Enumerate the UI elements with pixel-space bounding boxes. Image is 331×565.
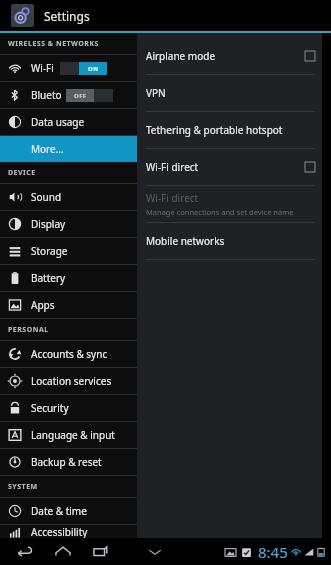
button[interactable]: Storage: [0, 238, 137, 264]
button[interactable]: Recent apps: [86, 540, 116, 564]
button[interactable]: Checkbox: [305, 51, 315, 61]
staticText: Bluetooth: [31, 88, 65, 102]
button[interactable]: Wi-Fi: [0, 55, 137, 81]
staticText: 8:45: [258, 542, 288, 562]
staticText: DEVICE: [8, 168, 36, 178]
button[interactable]: Battery: [0, 265, 137, 291]
staticText: PERSONAL: [8, 325, 49, 335]
button[interactable]: Sound: [0, 184, 137, 210]
button[interactable]: Tethering & portable hotspot: [146, 112, 322, 148]
button[interactable]: Checkbox: [305, 162, 315, 172]
button[interactable]: Toggle off: [66, 89, 113, 102]
staticText: Storage: [31, 244, 68, 258]
button[interactable]: Home: [48, 540, 78, 564]
button[interactable]: Accessibility: [0, 525, 137, 538]
button[interactable]: Airplane mode: [146, 38, 322, 74]
button[interactable]: Bluetooth: [0, 82, 137, 108]
button[interactable]: Language & input: [0, 422, 137, 448]
staticText: Accessibility: [31, 525, 88, 538]
button[interactable]: Wi-Fi direct: [146, 149, 322, 185]
staticText: Wi-Fi direct: [146, 191, 199, 205]
button[interactable]: VPN: [146, 75, 322, 111]
staticText: Apps: [31, 298, 55, 312]
staticText: Battery: [31, 271, 66, 285]
button[interactable]: Data usage: [0, 109, 137, 135]
staticText: Location services: [31, 374, 112, 388]
button[interactable]: Back: [10, 540, 40, 564]
staticText: Mobile networks: [146, 234, 225, 248]
staticText: WIRELESS & NETWORKS: [8, 39, 99, 49]
staticText: Accounts & sync: [31, 347, 108, 361]
staticText: VPN: [146, 86, 166, 100]
staticText: Wi-Fi: [31, 61, 54, 75]
button[interactable]: Backup & reset: [0, 449, 137, 475]
staticText: Backup & reset: [31, 455, 102, 469]
button[interactable]: Display: [0, 211, 137, 237]
staticText: Airplane mode: [146, 49, 216, 63]
staticText: SYSTEM: [8, 482, 38, 492]
other: Settings app icon: [11, 4, 34, 27]
button[interactable]: Location services: [0, 368, 137, 394]
button[interactable]: Accounts & sync: [0, 341, 137, 367]
staticText: ON: [88, 65, 99, 73]
staticText: Language & input: [31, 428, 115, 442]
staticText: Sound: [31, 190, 62, 204]
staticText: Settings: [44, 8, 90, 24]
button[interactable]: Wi-Fi direct: [146, 186, 322, 222]
staticText: Security: [31, 401, 69, 415]
button[interactable]: Hide keyboard: [142, 540, 168, 564]
staticText: Tethering & portable hotspot: [146, 123, 283, 137]
staticText: Display: [31, 217, 66, 231]
staticText: OFF: [74, 92, 87, 100]
button[interactable]: Mobile networks: [146, 223, 322, 259]
button[interactable]: Date & time: [0, 498, 137, 524]
staticText: Wi-Fi direct: [146, 160, 199, 174]
staticText: Date & time: [31, 504, 87, 518]
staticText: Data usage: [31, 115, 85, 129]
staticText: Manage connections and set device name: [146, 207, 294, 217]
staticText: More...: [31, 142, 64, 156]
button[interactable]: More...: [0, 136, 137, 162]
button[interactable]: Apps: [0, 292, 137, 318]
button[interactable]: Security: [0, 395, 137, 421]
button[interactable]: Toggle on: [60, 62, 107, 75]
